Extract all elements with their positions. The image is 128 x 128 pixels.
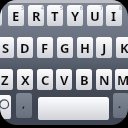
button[interactable]: C [37,69,53,90]
staticText: V [60,71,69,89]
button[interactable]: Emoji [0,95,11,119]
button[interactable]: E [8,5,24,26]
staticText: 3 [21,5,24,12]
staticText: U [90,7,100,25]
button[interactable]: J [96,37,112,58]
staticText: W [0,7,1,25]
button[interactable]: Y [67,5,83,26]
button[interactable]: H [77,37,93,58]
button[interactable]: K [116,37,128,58]
button[interactable]: F [37,37,53,58]
staticText: , [22,96,26,111]
button[interactable]: W [0,5,2,26]
staticText: X [21,71,30,89]
button[interactable]: T [47,5,63,26]
staticText: G [60,39,70,57]
staticText: E [12,7,20,25]
button[interactable]: G [57,37,73,58]
staticText: H [80,39,90,57]
staticText: 8 [119,5,122,12]
staticText: I [111,7,117,25]
staticText: J [102,39,107,57]
staticText: F [41,39,49,57]
button[interactable]: S [0,37,14,58]
staticText: S [2,39,10,57]
staticText: 5 [60,5,63,12]
button[interactable]: N [96,69,112,90]
button[interactable]: Space [38,97,109,120]
staticText: T [51,7,59,25]
staticText: D [20,39,30,57]
staticText: C [41,71,50,89]
staticText: 6 [80,5,83,12]
button[interactable]: B [76,69,92,90]
staticText: R [32,7,41,25]
button[interactable]: . [113,93,128,118]
button[interactable]: R [28,5,44,26]
button[interactable]: X [17,69,33,90]
staticText: K [120,39,128,57]
button[interactable]: M [115,69,128,90]
staticText: 4 [41,5,44,12]
button[interactable]: I [106,5,122,26]
staticText: Y [71,7,80,25]
staticText: Z [1,71,9,89]
button[interactable]: Z [0,69,13,90]
button[interactable]: V [56,69,72,90]
staticText: M [117,71,128,89]
staticText: N [99,71,110,89]
staticText: . [118,96,122,111]
staticText: 7 [100,5,103,12]
button[interactable]: U [87,5,103,26]
button[interactable]: D [17,37,33,58]
staticText: B [80,71,89,89]
button[interactable]: , [16,93,32,118]
